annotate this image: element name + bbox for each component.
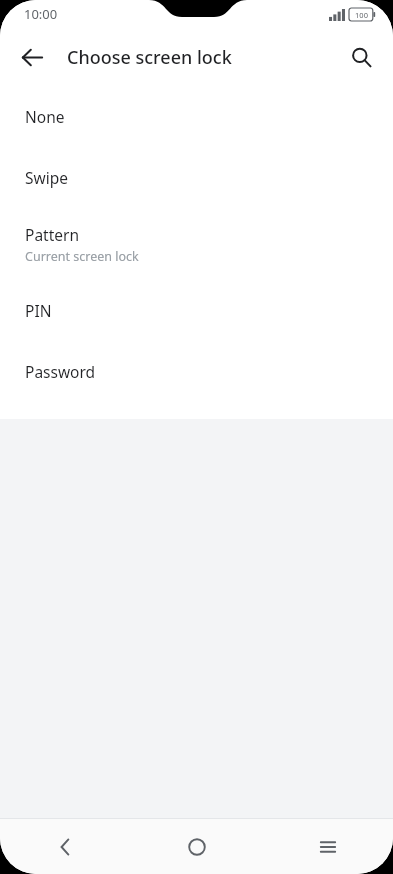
staticText: Pattern: [25, 224, 79, 245]
staticText: PIN: [25, 300, 52, 321]
button[interactable]: Pattern: [0, 208, 393, 280]
button[interactable]: Home: [131, 819, 262, 874]
staticText: Password: [25, 361, 96, 382]
button[interactable]: Password: [0, 341, 393, 402]
button[interactable]: Back: [10, 35, 54, 79]
button[interactable]: Back: [0, 819, 131, 874]
button[interactable]: Search: [339, 35, 383, 79]
staticText: 10:00: [24, 5, 58, 23]
button[interactable]: Recent apps: [262, 819, 393, 874]
button[interactable]: PIN: [0, 280, 393, 341]
staticText: None: [25, 106, 65, 127]
staticText: Choose screen lock: [67, 45, 232, 70]
staticText: Swipe: [25, 167, 68, 188]
staticText: 100: [355, 10, 368, 20]
staticText: Current screen lock: [25, 248, 139, 265]
button[interactable]: Swipe: [0, 147, 393, 208]
button[interactable]: None: [0, 86, 393, 147]
